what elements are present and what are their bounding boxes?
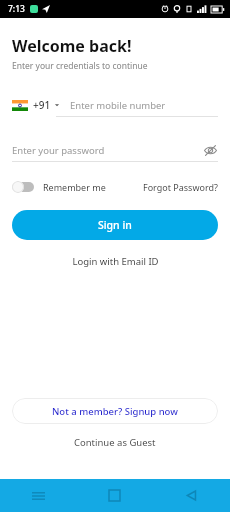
button[interactable]: Remember me — [12, 181, 106, 193]
button[interactable]: Show password — [202, 142, 218, 158]
button[interactable]: Forgot Password? — [143, 181, 218, 193]
button[interactable]: Continue as Guest — [0, 436, 230, 449]
button[interactable]: Login with Email ID — [0, 255, 230, 268]
staticText: Enter your credentials to continue — [12, 60, 148, 72]
staticText: Continue as Guest — [74, 436, 156, 449]
button[interactable]: Recents — [0, 479, 76, 512]
staticText: Welcome back! — [12, 35, 132, 57]
staticText: Remember me — [43, 181, 106, 193]
button[interactable]: +91 — [33, 98, 60, 112]
button[interactable]: Sign in — [12, 210, 218, 240]
button[interactable]: Enter mobile number — [70, 99, 218, 112]
button[interactable]: Home — [76, 479, 153, 512]
staticText: Forgot Password? — [143, 181, 218, 193]
button[interactable]: Not a member? Signup now — [12, 398, 218, 424]
staticText: Not a member? Signup now — [52, 405, 178, 418]
staticText: Enter mobile number — [70, 99, 166, 112]
staticText: 7:13 — [8, 3, 25, 15]
button[interactable]: Enter your password — [12, 139, 218, 161]
staticText: +91 — [33, 98, 51, 112]
staticText: Login with Email ID — [72, 255, 159, 268]
button[interactable]: Back — [153, 479, 230, 512]
staticText: Sign in — [98, 218, 132, 232]
staticText: Enter your password — [12, 144, 202, 157]
